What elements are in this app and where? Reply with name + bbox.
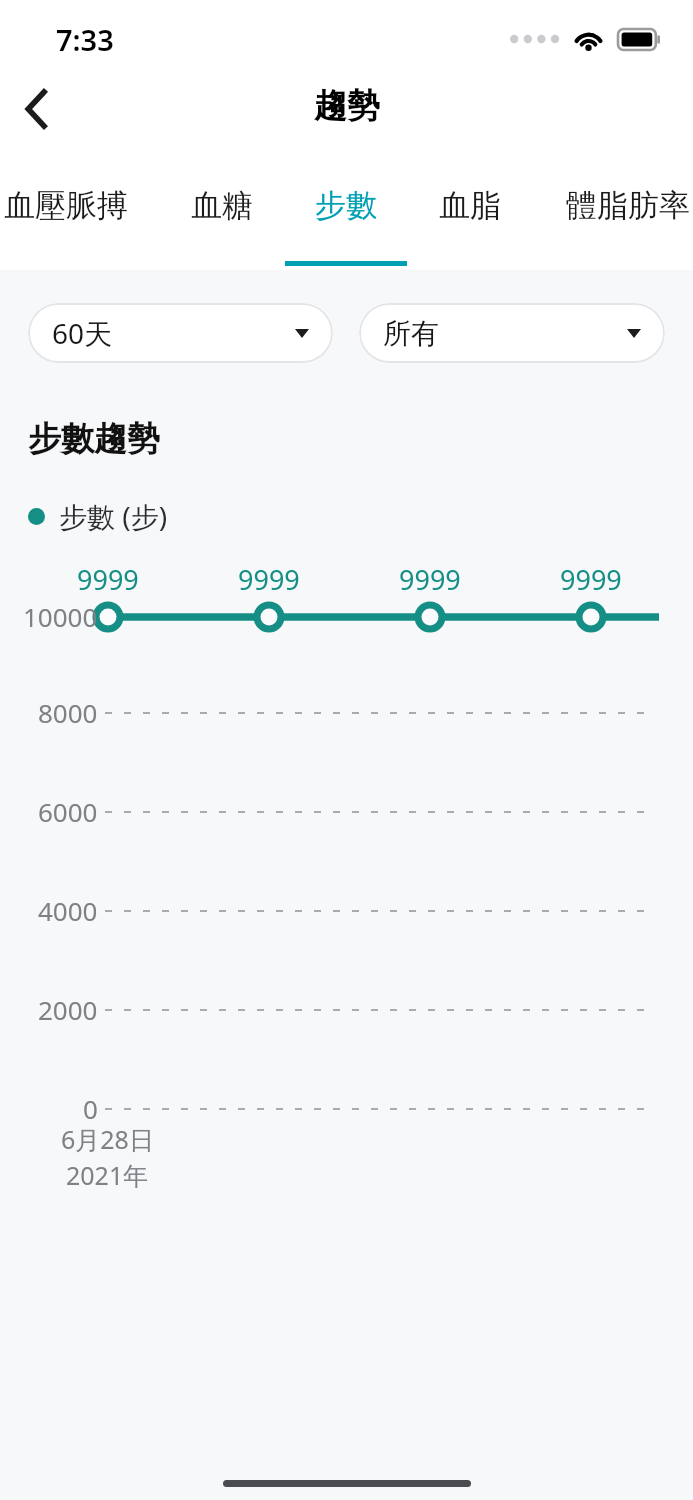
staticText: 8000 <box>38 695 98 730</box>
staticText: 9999 <box>238 561 300 598</box>
staticText: 步數趨勢 <box>28 418 160 460</box>
button[interactable]: 所有 <box>359 303 665 363</box>
button[interactable]: 血壓脈搏 <box>0 165 142 245</box>
staticText: 9999 <box>399 561 461 598</box>
button[interactable]: 血脂 <box>432 165 508 245</box>
staticText: 9999 <box>560 561 622 598</box>
staticText: 血脂 <box>439 186 501 225</box>
staticText: 步數 (步) <box>59 497 168 535</box>
staticText: 7:33 <box>56 20 114 59</box>
button[interactable]: 60天 <box>28 303 333 363</box>
staticText: 所有 <box>383 316 439 351</box>
staticText: 趨勢 <box>314 85 380 127</box>
staticText: 6000 <box>38 794 98 829</box>
staticText: 4000 <box>38 893 98 928</box>
staticText: 血糖 <box>191 186 253 225</box>
button[interactable]: 血糖 <box>184 165 260 245</box>
staticText: 6月28日 <box>61 1122 154 1156</box>
staticText: 體脂肪率 <box>566 186 690 225</box>
staticText: 血壓脈搏 <box>4 186 128 225</box>
staticText: 9999 <box>77 561 139 598</box>
staticText: 2021年 <box>66 1158 149 1192</box>
staticText: 0 <box>83 1091 98 1126</box>
staticText: 10000 <box>23 599 98 634</box>
button[interactable]: Back <box>6 78 68 140</box>
staticText: 2000 <box>38 992 98 1027</box>
staticText: 60天 <box>52 314 113 352</box>
button[interactable]: 體脂肪率 <box>552 165 693 245</box>
button[interactable]: 步數 <box>308 165 384 245</box>
staticText: 步數 <box>315 186 377 225</box>
